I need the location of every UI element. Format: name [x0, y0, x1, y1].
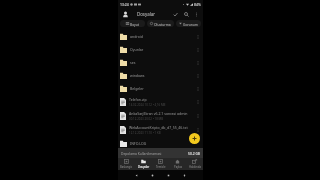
button[interactable]: More options [192, 10, 201, 19]
button[interactable]: Item options [195, 60, 201, 66]
button[interactable]: Home [151, 174, 154, 177]
button[interactable]: INFO.LOG [118, 137, 203, 149]
staticText: Paylas [174, 165, 182, 169]
button[interactable]: Oyunlar [118, 43, 203, 56]
button[interactable]: Select [170, 10, 181, 19]
staticText: Baslangic [120, 165, 133, 169]
button[interactable]: Boyut [120, 20, 145, 27]
button[interactable]: Hide keyboard [183, 174, 186, 177]
staticText: Belgeler [130, 86, 144, 91]
staticText: 12.12.2023 11.10 • 1 KB [129, 131, 161, 135]
button[interactable]: Search [181, 10, 192, 19]
staticText: 14.02.2024 10.12 • 4,16 MB [129, 103, 166, 107]
staticText: INFO.LOG [130, 141, 147, 146]
button[interactable]: Item options [195, 73, 201, 79]
button[interactable]: Item options [195, 113, 201, 119]
staticText: Boyut [130, 22, 139, 26]
staticText: Depolama Kullanilmamasi [121, 151, 162, 155]
staticText: Gorunum [183, 22, 198, 26]
button[interactable]: Depolama Kullanilmamasi [118, 148, 203, 158]
staticText: WebAccountKripto_db_d7_55_46.txt [129, 125, 188, 130]
button[interactable]: Olusturma [147, 20, 174, 27]
button[interactable]: windows [118, 69, 203, 82]
staticText: Hakkinda [189, 165, 201, 169]
button[interactable]: Item options [195, 34, 201, 40]
staticText: 30.12.2023 20.02 • 18 MB [129, 117, 164, 121]
button[interactable]: Hakkinda [186, 158, 203, 170]
button[interactable]: Back [135, 174, 138, 177]
staticText: Oyunlar [130, 47, 144, 52]
button[interactable]: Belgeler [118, 82, 203, 95]
button[interactable]: Item options [195, 99, 201, 105]
staticText: 84% [194, 2, 201, 7]
staticText: 50.2 GB [188, 151, 200, 155]
button[interactable]: Baslangic [118, 158, 135, 170]
button[interactable]: AnkaSarjEkran v6.2.1 sonrasi admin [118, 109, 203, 123]
staticText: windows [130, 73, 145, 78]
button[interactable]: Temizle [152, 158, 169, 170]
staticText: android [130, 34, 143, 39]
button[interactable]: Item options [195, 127, 201, 133]
button[interactable]: Item options [195, 47, 201, 53]
button[interactable]: Paylas [169, 158, 186, 170]
staticText: Temizle [156, 165, 166, 169]
button[interactable]: Account [121, 10, 130, 19]
button[interactable]: Add [189, 133, 200, 144]
staticText: AnkaSarjEkran v6.2.1 sonrasi admin [129, 111, 188, 116]
staticText: Dosyalar [137, 11, 156, 17]
staticText: 13:24 [120, 2, 129, 7]
staticText: ses [130, 60, 136, 65]
staticText: Dosyalar [138, 165, 150, 169]
button[interactable]: WebAccountKripto_db_d7_55_46.txt [118, 123, 203, 137]
staticText: Olusturma [154, 22, 171, 26]
button[interactable]: Gorunum [176, 20, 201, 27]
button[interactable]: Telefon.zip [118, 95, 203, 109]
button[interactable]: Item options [195, 86, 201, 92]
button[interactable]: Recent apps [167, 174, 170, 177]
button[interactable]: Dosyalar [135, 158, 152, 170]
button[interactable]: ses [118, 56, 203, 69]
button[interactable]: android [118, 30, 203, 43]
staticText: Telefon.zip [129, 97, 147, 102]
